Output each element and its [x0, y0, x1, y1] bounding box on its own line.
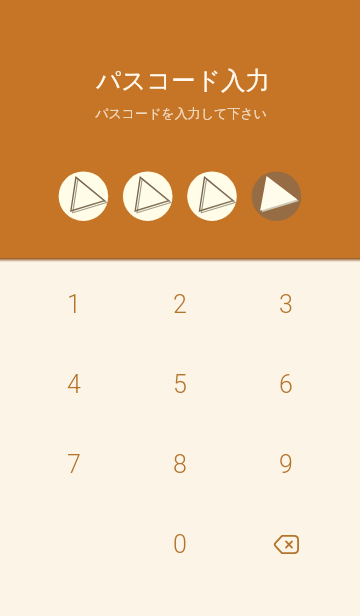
staticText: 4	[67, 370, 81, 399]
staticText: 3	[279, 290, 293, 319]
button[interactable]: 4	[38, 350, 110, 418]
button[interactable]: 5	[144, 350, 216, 418]
button[interactable]: 0	[144, 510, 216, 578]
staticText: 6	[279, 370, 293, 399]
button[interactable]: 1	[38, 270, 110, 338]
staticText: パスコード入力	[3, 65, 360, 96]
staticText: 1	[67, 290, 81, 319]
button[interactable]: 8	[144, 430, 216, 498]
staticText: 0	[173, 530, 187, 559]
staticText: 7	[67, 450, 81, 479]
button[interactable]: 3	[250, 270, 322, 338]
staticText: 9	[279, 450, 293, 479]
button[interactable]: 6	[250, 350, 322, 418]
button[interactable]: 2	[144, 270, 216, 338]
staticText: 2	[173, 290, 187, 319]
button[interactable]: Backspace	[250, 510, 322, 578]
staticText: パスコードを入力して下さい	[1, 105, 360, 121]
button[interactable]: 9	[250, 430, 322, 498]
staticText: 5	[173, 370, 187, 399]
staticText: 8	[173, 450, 187, 479]
button[interactable]: 7	[38, 430, 110, 498]
